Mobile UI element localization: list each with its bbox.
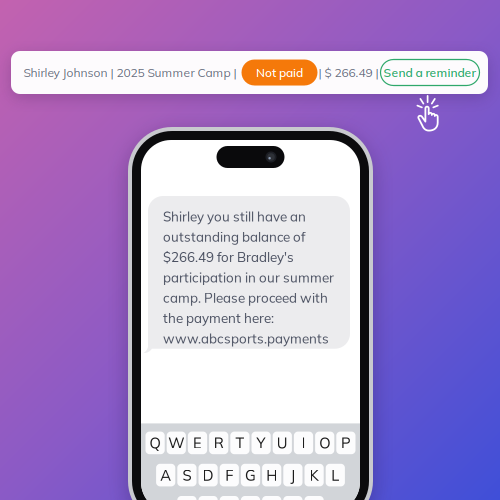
staticText: T bbox=[235, 434, 244, 452]
button[interactable]: C bbox=[220, 496, 239, 500]
button[interactable]: G bbox=[241, 464, 260, 486]
staticText: | $ 266.49 | bbox=[318, 65, 378, 80]
button[interactable]: J bbox=[283, 464, 302, 486]
button[interactable]: U bbox=[273, 432, 292, 454]
button[interactable]: N bbox=[283, 496, 302, 500]
staticText: O bbox=[319, 434, 330, 452]
staticText: www.abcsports.payments bbox=[163, 330, 329, 347]
staticText: Shirley Johnson | 2025 Summer Camp | bbox=[23, 65, 236, 80]
button[interactable]: K bbox=[304, 464, 324, 486]
button[interactable]: R bbox=[209, 432, 228, 454]
button[interactable]: S bbox=[177, 464, 196, 486]
staticText: Q bbox=[150, 434, 161, 452]
staticText: Not paid bbox=[256, 65, 303, 80]
button[interactable]: X bbox=[198, 496, 218, 500]
staticText: Shirley you still have an bbox=[163, 208, 306, 225]
staticText: H bbox=[266, 466, 277, 484]
button[interactable]: M bbox=[304, 496, 324, 500]
staticText: camp. Please proceed with bbox=[163, 289, 328, 306]
staticText: participation in our summer bbox=[163, 269, 334, 286]
staticText: I bbox=[301, 434, 305, 452]
button[interactable]: Send a reminder bbox=[380, 59, 479, 85]
staticText: L bbox=[331, 466, 339, 484]
button[interactable]: Y bbox=[251, 432, 271, 454]
staticText: W bbox=[168, 434, 184, 452]
button[interactable]: W bbox=[167, 432, 186, 454]
button[interactable]: F bbox=[220, 464, 239, 486]
staticText: Send a reminder bbox=[383, 65, 476, 80]
staticText: $266.49 for Bradley's bbox=[163, 249, 294, 265]
staticText: D bbox=[203, 466, 214, 484]
button[interactable]: B bbox=[262, 496, 281, 500]
staticText: A bbox=[160, 466, 171, 484]
button[interactable]: P bbox=[336, 432, 355, 454]
staticText: G bbox=[245, 466, 256, 484]
button[interactable]: V bbox=[241, 496, 260, 500]
staticText: E bbox=[193, 434, 202, 452]
staticText: R bbox=[214, 434, 224, 452]
button[interactable]: A bbox=[156, 464, 175, 486]
staticText: the payment here: bbox=[163, 310, 274, 326]
staticText: U bbox=[277, 434, 288, 452]
staticText: P bbox=[341, 434, 351, 452]
button[interactable]: T bbox=[230, 432, 249, 454]
button[interactable]: Q bbox=[145, 432, 165, 454]
staticText: J bbox=[290, 466, 295, 484]
button[interactable]: I bbox=[294, 432, 313, 454]
button[interactable]: O bbox=[315, 432, 334, 454]
staticText: outstanding balance of bbox=[163, 228, 306, 245]
button[interactable]: H bbox=[262, 464, 281, 486]
staticText: K bbox=[310, 466, 319, 484]
staticText: S bbox=[182, 466, 191, 484]
button[interactable]: Z bbox=[177, 496, 196, 500]
button[interactable]: Not paid bbox=[241, 59, 317, 85]
staticText: Y bbox=[257, 434, 266, 452]
button[interactable]: D bbox=[198, 464, 218, 486]
button[interactable]: L bbox=[326, 464, 345, 486]
button[interactable]: E bbox=[188, 432, 207, 454]
staticText: F bbox=[225, 466, 233, 484]
